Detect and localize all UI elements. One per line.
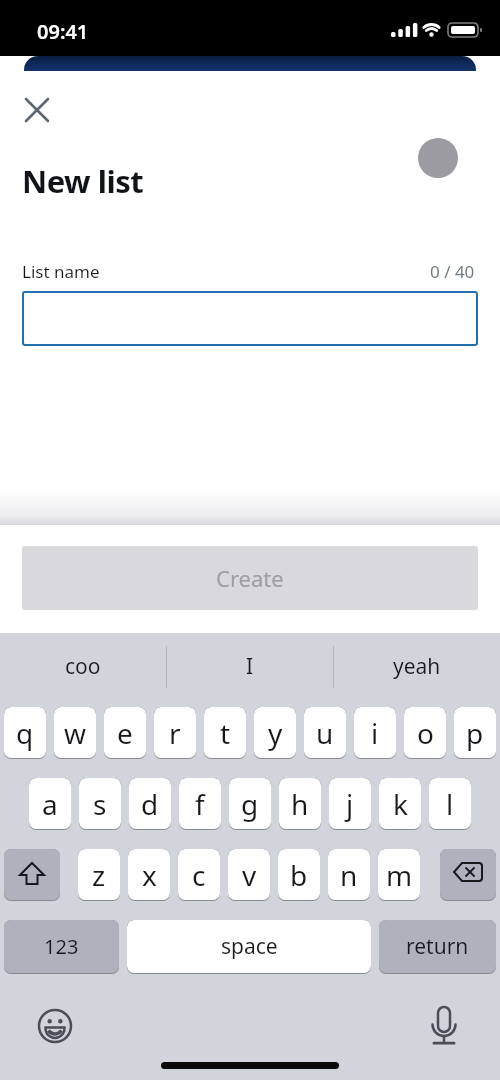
staticText: coo — [65, 652, 101, 681]
button[interactable]: h — [279, 778, 321, 830]
staticText: List name — [22, 260, 100, 283]
staticText: r — [169, 714, 181, 752]
staticText: New list — [22, 160, 144, 202]
staticText: m — [386, 856, 413, 894]
staticText: k — [393, 785, 408, 823]
button[interactable]: o — [404, 707, 446, 759]
button[interactable]: g — [229, 778, 271, 830]
staticText: w — [64, 714, 87, 752]
button[interactable]: x — [128, 849, 170, 901]
staticText: c — [192, 856, 206, 894]
button[interactable]: I — [167, 633, 333, 700]
button[interactable]: yeah — [334, 633, 500, 700]
button[interactable] — [4, 849, 60, 901]
staticText: e — [117, 714, 133, 752]
staticText: f — [195, 785, 205, 823]
button[interactable]: m — [378, 849, 420, 901]
button[interactable]: d — [129, 778, 171, 830]
staticText: l — [446, 785, 454, 823]
button[interactable]: a — [29, 778, 71, 830]
button[interactable] — [22, 291, 478, 346]
button[interactable]: 123 — [4, 920, 119, 974]
button[interactable]: e — [104, 707, 146, 759]
staticText: 09:41 — [37, 18, 89, 45]
staticText: space — [221, 932, 278, 961]
staticText: u — [316, 714, 334, 752]
button[interactable] — [31, 1002, 79, 1050]
staticText: q — [16, 714, 34, 752]
staticText: t — [220, 714, 231, 752]
button[interactable]: t — [204, 707, 246, 759]
staticText: d — [141, 785, 159, 823]
staticText: i — [371, 714, 379, 752]
button[interactable] — [15, 88, 59, 132]
staticText: return — [406, 932, 469, 961]
button[interactable]: coo — [0, 633, 166, 700]
button[interactable]: k — [379, 778, 421, 830]
button[interactable]: w — [54, 707, 96, 759]
button[interactable]: y — [254, 707, 296, 759]
staticText: s — [93, 785, 107, 823]
staticText: v — [242, 856, 257, 894]
button[interactable]: f — [179, 778, 221, 830]
staticText: Create — [216, 563, 284, 593]
staticText: y — [268, 714, 283, 752]
button[interactable]: n — [328, 849, 370, 901]
button[interactable] — [418, 138, 458, 178]
staticText: 0 / 40 — [430, 260, 475, 283]
staticText: h — [291, 785, 309, 823]
button[interactable]: return — [379, 920, 496, 974]
button[interactable]: Create — [22, 546, 478, 610]
staticText: yeah — [393, 652, 441, 681]
button[interactable]: i — [354, 707, 396, 759]
staticText: b — [290, 856, 308, 894]
button[interactable]: u — [304, 707, 346, 759]
button[interactable]: p — [454, 707, 496, 759]
button[interactable]: r — [154, 707, 196, 759]
staticText: n — [340, 856, 358, 894]
button[interactable]: b — [278, 849, 320, 901]
staticText: o — [417, 714, 434, 752]
button[interactable]: s — [79, 778, 121, 830]
staticText: I — [246, 652, 254, 681]
button[interactable]: c — [178, 849, 220, 901]
button[interactable] — [440, 849, 496, 901]
staticText: j — [346, 785, 354, 823]
staticText: a — [42, 785, 58, 823]
staticText: 123 — [44, 933, 79, 960]
staticText: p — [466, 714, 484, 752]
button[interactable]: v — [228, 849, 270, 901]
staticText: g — [241, 785, 259, 823]
button[interactable] — [420, 1000, 468, 1048]
button[interactable]: z — [78, 849, 120, 901]
staticText: x — [142, 856, 157, 894]
button[interactable]: j — [329, 778, 371, 830]
button[interactable]: q — [4, 707, 46, 759]
button[interactable]: space — [127, 920, 371, 974]
button[interactable]: l — [429, 778, 471, 830]
staticText: z — [92, 856, 106, 894]
